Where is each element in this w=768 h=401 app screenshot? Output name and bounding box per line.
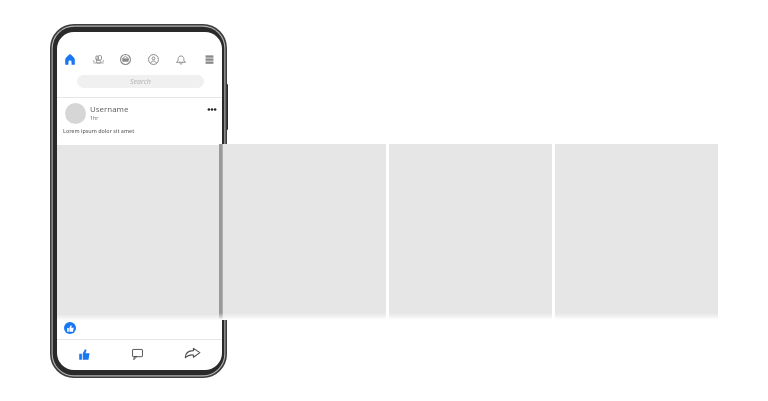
button[interactable]: More options: [204, 101, 220, 117]
button[interactable]: Like: [71, 342, 97, 366]
button[interactable]: Search: [77, 75, 204, 88]
button[interactable]: Comment: [124, 342, 150, 366]
button[interactable]: Friends: [86, 48, 110, 70]
button[interactable]: Profile: [141, 48, 165, 70]
staticText: Lorem ipsum dolor sit amet: [63, 127, 135, 134]
button[interactable]: Share: [179, 341, 205, 365]
staticText: 1hr: [90, 114, 99, 121]
staticText: Username: [90, 104, 129, 115]
button[interactable]: Menu: [197, 48, 221, 70]
staticText: Search: [130, 77, 151, 87]
button[interactable]: Marketplace: [113, 48, 137, 70]
button[interactable]: Notifications: [169, 48, 193, 70]
button[interactable]: Home: [58, 48, 82, 70]
